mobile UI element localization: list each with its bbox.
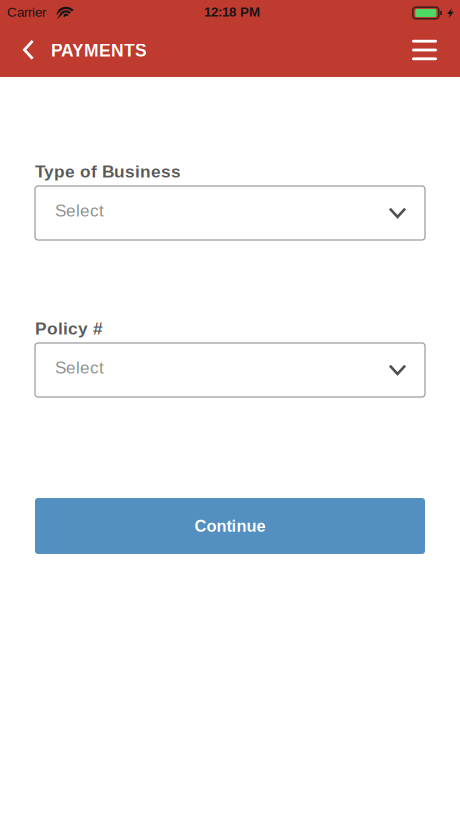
staticText: Carrier <box>7 4 46 19</box>
button[interactable]: Menu <box>394 26 460 77</box>
button[interactable]: Continue <box>35 498 425 554</box>
staticText: Select <box>55 201 104 220</box>
staticText: Select <box>55 358 104 377</box>
button[interactable]: Select <box>35 186 425 240</box>
staticText: Type of Business <box>35 162 181 181</box>
button[interactable]: Select <box>35 343 425 397</box>
button[interactable]: Back <box>0 26 51 77</box>
staticText: PAYMENTS <box>51 41 147 60</box>
staticText: Continue <box>194 517 265 535</box>
staticText: 12:18 PM <box>204 5 260 19</box>
staticText: Policy # <box>35 319 103 338</box>
